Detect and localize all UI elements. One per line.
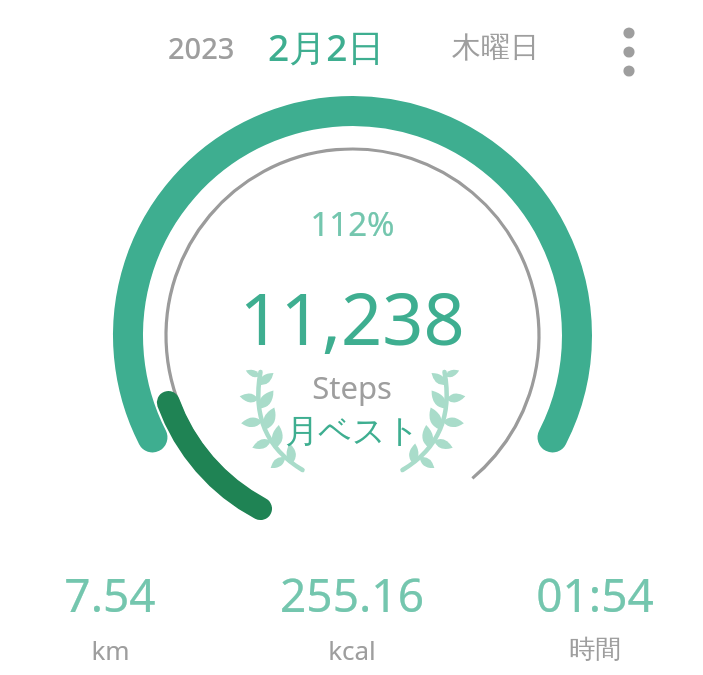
staticText: 255.16 [280, 563, 424, 619]
button[interactable]: 木曜日 [452, 29, 539, 66]
button[interactable]: 2月2日 [268, 21, 385, 72]
button[interactable]: 255.16 [242, 563, 462, 671]
staticText: kcal [328, 632, 376, 667]
staticText: 11,238 [239, 268, 465, 358]
staticText: 木曜日 [452, 29, 539, 66]
staticText: 112% [310, 201, 395, 243]
button[interactable]: 7.54 [0, 563, 220, 671]
staticText: 01:54 [536, 563, 654, 619]
button[interactable]: 01:54 [485, 563, 703, 671]
staticText: 2023 [168, 28, 235, 67]
button[interactable]: More options [608, 24, 650, 80]
staticText: Steps [312, 366, 392, 406]
staticText: 時間 [569, 633, 621, 666]
staticText: 月ベスト [285, 410, 420, 452]
staticText: km [91, 632, 130, 667]
staticText: 7.54 [64, 563, 156, 619]
staticText: 2月2日 [268, 21, 385, 72]
button[interactable]: 2023 [168, 28, 235, 67]
